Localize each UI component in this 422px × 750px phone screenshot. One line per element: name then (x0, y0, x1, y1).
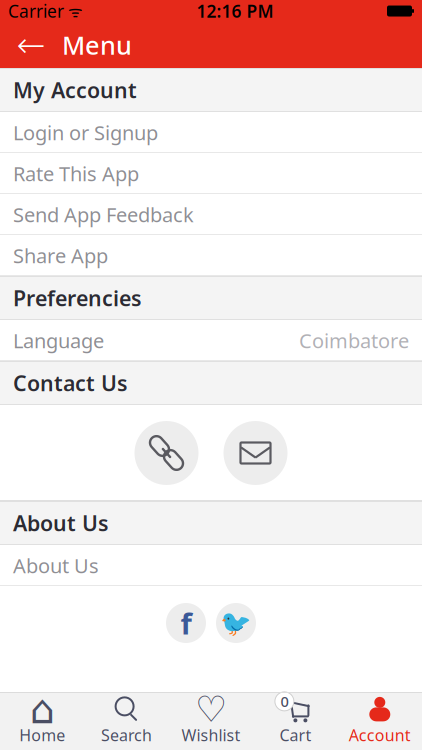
staticText: Search (101, 724, 152, 746)
staticText: About Us (13, 509, 109, 537)
staticText: f (180, 603, 191, 642)
staticText: About Us (13, 552, 99, 579)
button[interactable]: Search (84, 693, 169, 749)
staticText: Account (349, 724, 411, 746)
button[interactable]: Back (14, 25, 48, 65)
button[interactable]: Call us (134, 421, 198, 485)
staticText: My Account (13, 76, 137, 104)
staticText: Home (19, 724, 65, 746)
button[interactable]: About Us (0, 545, 422, 586)
staticText: 0 (280, 692, 288, 711)
staticText: Login or Signup (13, 119, 158, 146)
staticText: Language (13, 327, 104, 354)
button[interactable]: ♡ (169, 693, 253, 749)
button[interactable]: Account (338, 693, 422, 749)
staticText: Menu (62, 28, 132, 62)
staticText: ← (16, 25, 45, 65)
button[interactable]: 🛒 (253, 693, 338, 749)
staticText: Wishlist (181, 724, 240, 746)
button[interactable]: Twitter (216, 603, 256, 643)
staticText: Share App (13, 242, 108, 269)
staticText: Cart (279, 724, 311, 746)
staticText: ⌂ (30, 687, 55, 732)
button[interactable]: Facebook (166, 603, 206, 643)
staticText: Coimbatore (299, 327, 409, 354)
staticText: Rate This App (13, 160, 139, 187)
staticText: 12:16 PM (196, 0, 273, 22)
button[interactable]: Language (0, 320, 422, 361)
staticText: Carrier (8, 0, 64, 22)
button[interactable]: Send App Feedback (0, 194, 422, 235)
staticText: Send App Feedback (13, 201, 194, 228)
staticText: 🐦 (220, 608, 252, 637)
button[interactable]: ⌂ (0, 693, 84, 749)
staticText: ᯤ (64, 0, 83, 22)
button[interactable]: Rate This App (0, 153, 422, 194)
button[interactable]: Email us (223, 421, 287, 485)
button[interactable]: Login or Signup (0, 112, 422, 153)
button[interactable]: Share App (0, 235, 422, 276)
staticText: ♡ (195, 689, 227, 730)
staticText: Preferencies (13, 284, 142, 312)
staticText: Contact Us (13, 369, 128, 397)
